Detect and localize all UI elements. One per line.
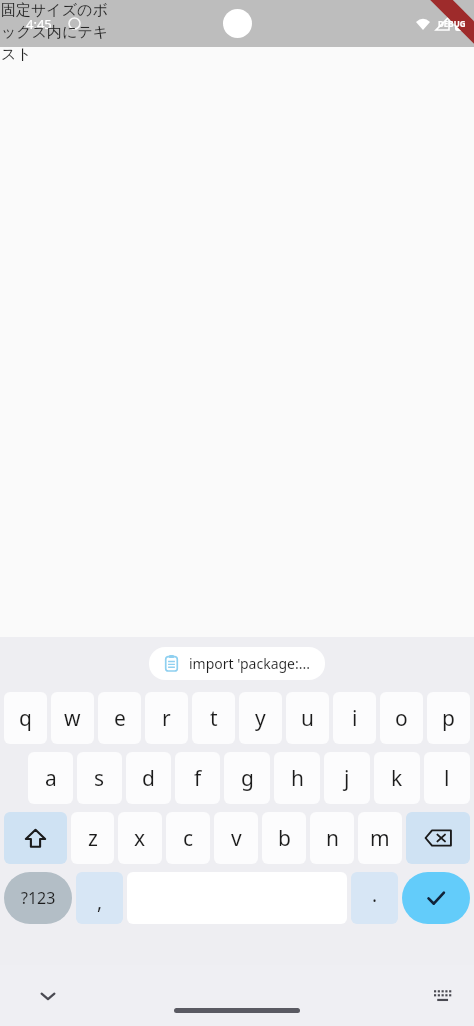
button[interactable]: l <box>424 752 470 804</box>
button[interactable]: w <box>51 692 94 744</box>
button[interactable]: v <box>214 812 258 864</box>
button[interactable]: c <box>166 812 210 864</box>
staticText: n <box>326 824 339 853</box>
button[interactable]: , <box>76 872 123 924</box>
staticText: h <box>291 764 304 793</box>
staticText: m <box>370 824 390 853</box>
staticText: b <box>278 824 291 853</box>
staticText: d <box>142 764 155 793</box>
button[interactable]: Shift <box>4 812 67 864</box>
button[interactable]: b <box>262 812 306 864</box>
staticText: l <box>444 764 450 793</box>
staticText: e <box>114 704 126 733</box>
staticText: v <box>231 824 242 853</box>
staticText: import 'package:... <box>189 654 311 673</box>
staticText: 固定サイズのボックス内にテキスト <box>1 1 119 64</box>
button[interactable]: d <box>126 752 171 804</box>
button[interactable]: o <box>380 692 423 744</box>
staticText: w <box>64 704 81 733</box>
staticText: , <box>97 889 103 915</box>
staticText: f <box>194 764 202 793</box>
staticText: c <box>183 824 194 853</box>
staticText: q <box>19 704 32 733</box>
staticText: g <box>241 764 254 793</box>
staticText: x <box>134 824 146 853</box>
button[interactable]: e <box>98 692 141 744</box>
button[interactable]: h <box>274 752 320 804</box>
button[interactable]: Hide keyboard <box>38 986 58 1006</box>
staticText: y <box>255 704 266 733</box>
button[interactable]: import 'package:... <box>149 647 325 680</box>
button[interactable]: r <box>145 692 188 744</box>
button[interactable]: Backspace <box>406 812 470 864</box>
staticText: 4:45 <box>26 15 52 33</box>
staticText: p <box>442 704 455 733</box>
staticText: j <box>344 764 350 793</box>
staticText: a <box>45 764 57 793</box>
button[interactable]: m <box>358 812 402 864</box>
button[interactable]: Enter <box>402 872 470 924</box>
button[interactable]: ?123 <box>4 872 72 924</box>
button[interactable]: p <box>427 692 470 744</box>
button[interactable]: i <box>333 692 376 744</box>
staticText: u <box>301 704 314 733</box>
button[interactable]: j <box>324 752 370 804</box>
staticText: s <box>94 764 105 793</box>
staticText: o <box>395 704 408 733</box>
button[interactable]: u <box>286 692 329 744</box>
staticText: z <box>88 824 98 853</box>
staticText: t <box>210 704 218 733</box>
staticText: ?123 <box>21 887 56 909</box>
staticText: r <box>162 704 171 733</box>
button[interactable]: y <box>239 692 282 744</box>
button[interactable]: n <box>310 812 354 864</box>
button[interactable]: a <box>28 752 73 804</box>
staticText: k <box>391 764 403 793</box>
staticText: . <box>372 882 378 908</box>
button[interactable]: q <box>4 692 47 744</box>
button[interactable]: t <box>192 692 235 744</box>
button[interactable]: g <box>224 752 270 804</box>
button[interactable]: s <box>77 752 122 804</box>
button[interactable]: f <box>175 752 220 804</box>
button[interactable]: . <box>351 872 398 924</box>
staticText: DEBUG <box>438 18 466 29</box>
button[interactable]: k <box>374 752 420 804</box>
button[interactable]: x <box>118 812 162 864</box>
staticText: i <box>352 704 358 733</box>
button[interactable]: z <box>71 812 114 864</box>
button[interactable]: Switch keyboard <box>434 987 452 1005</box>
